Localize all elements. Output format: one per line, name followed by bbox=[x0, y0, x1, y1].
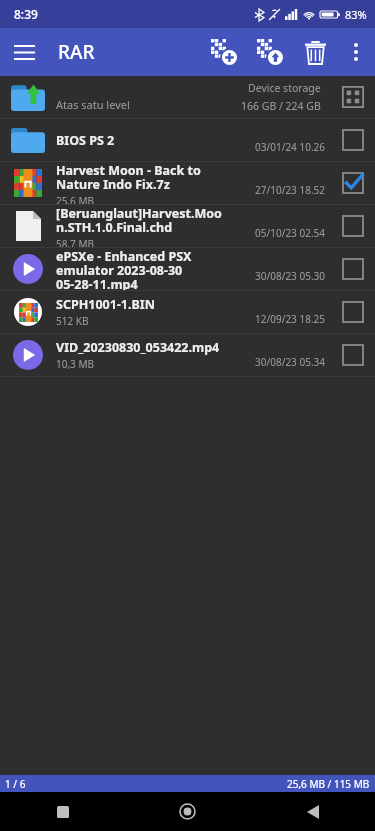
button[interactable]: Extract archive bbox=[247, 28, 293, 76]
button[interactable]: Open navigation menu bbox=[0, 28, 48, 76]
button[interactable]: SCPH1001-1.BIN bbox=[0, 291, 375, 333]
button[interactable]: Not selected bbox=[331, 291, 375, 333]
button[interactable]: VID_20230830_053422.mp4 bbox=[0, 334, 375, 376]
staticText: 30/08/23 05.30 bbox=[255, 269, 325, 283]
staticText: VID_20230830_053422.mp4 bbox=[56, 339, 220, 356]
staticText: 8:39 bbox=[14, 6, 38, 22]
staticText: 27/10/23 18.52 bbox=[255, 183, 325, 197]
staticText: 512 KB bbox=[56, 314, 89, 328]
staticText: [Beruanglaut]Harvest.Moon.STH.1.0.Final.… bbox=[56, 205, 227, 236]
button[interactable]: ePSXe - Enhanced PSX emulator 2023-08-30… bbox=[0, 248, 375, 290]
button[interactable]: Not selected bbox=[331, 205, 375, 247]
button[interactable]: Back bbox=[250, 792, 375, 831]
staticText: ePSXe - Enhanced PSX emulator 2023-08-30… bbox=[56, 248, 227, 290]
staticText: Harvest Moon - Back to Nature Indo Fix.7… bbox=[56, 162, 227, 193]
staticText: Atas satu level bbox=[56, 97, 241, 112]
button[interactable]: Delete bbox=[293, 28, 337, 76]
button[interactable]: Atas satu level bbox=[0, 76, 375, 118]
staticText: 12/09/23 18.25 bbox=[255, 312, 325, 326]
button[interactable]: Not selected bbox=[331, 248, 375, 290]
button[interactable]: [Beruanglaut]Harvest.Moon.STH.1.0.Final.… bbox=[0, 205, 375, 247]
staticText: 83% bbox=[345, 7, 367, 22]
button[interactable]: Harvest Moon - Back to Nature Indo Fix.7… bbox=[0, 162, 375, 204]
button[interactable]: Add to archive bbox=[201, 28, 247, 76]
staticText: 30/08/23 05.34 bbox=[255, 355, 325, 369]
staticText: RAR bbox=[58, 39, 95, 65]
button[interactable]: Not selected bbox=[331, 334, 375, 376]
staticText: 03/01/24 10.26 bbox=[255, 140, 325, 154]
staticText: 1 / 6 bbox=[5, 777, 26, 791]
staticText: SCPH1001-1.BIN bbox=[56, 296, 155, 313]
button[interactable]: BIOS PS 2 bbox=[0, 119, 375, 161]
staticText: 10,3 MB bbox=[56, 357, 95, 371]
staticText: 25,6 MB / 115 MB bbox=[287, 777, 370, 791]
staticText: 25,6 MB bbox=[56, 194, 95, 204]
button[interactable]: Not selected bbox=[331, 119, 375, 161]
staticText: 05/10/23 02.54 bbox=[255, 226, 325, 240]
staticText: 58,7 MB bbox=[56, 237, 95, 247]
button[interactable]: Grid view bbox=[331, 76, 375, 118]
staticText: Device storage bbox=[248, 81, 321, 95]
button[interactable]: Selected bbox=[331, 162, 375, 204]
button[interactable]: Recent apps bbox=[0, 792, 125, 831]
staticText: BIOS PS 2 bbox=[56, 132, 115, 149]
button[interactable]: More options bbox=[337, 28, 375, 76]
staticText: 166 GB / 224 GB bbox=[241, 99, 321, 113]
button[interactable]: Home bbox=[125, 792, 250, 831]
